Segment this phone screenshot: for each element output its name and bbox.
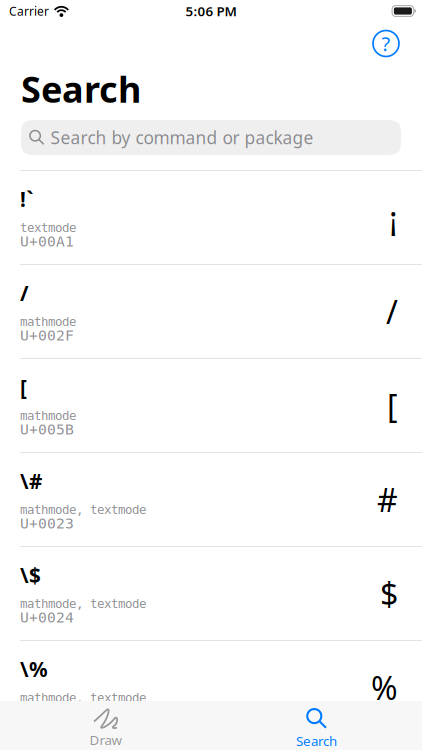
staticText: /: [20, 279, 29, 307]
staticText: !`: [20, 185, 34, 213]
staticText: textmode: [20, 220, 76, 235]
button[interactable]: Help: [368, 25, 404, 61]
staticText: \$: [20, 561, 41, 589]
staticText: Search by command or package: [50, 126, 313, 149]
button[interactable]: Search: [211, 701, 422, 750]
staticText: \%: [20, 655, 48, 683]
staticText: [: [20, 373, 27, 401]
staticText: Search: [296, 732, 337, 750]
staticText: \#: [20, 467, 42, 495]
staticText: mathmode: [20, 408, 76, 423]
staticText: Draw: [89, 731, 121, 749]
staticText: mathmode, textmode: [20, 502, 146, 517]
button[interactable]: !`: [0, 171, 422, 264]
staticText: 5:06 PM: [185, 2, 236, 20]
staticText: mathmode: [20, 314, 76, 329]
staticText: %: [371, 666, 398, 709]
staticText: [: [387, 384, 398, 427]
staticText: ?: [381, 30, 390, 57]
button[interactable]: [: [0, 359, 422, 452]
staticText: ¡: [389, 196, 398, 239]
button[interactable]: \#: [0, 453, 422, 546]
button[interactable]: /: [0, 265, 422, 358]
staticText: $: [380, 572, 398, 615]
button[interactable]: Search by command or package: [21, 120, 401, 155]
staticText: mathmode, textmode: [20, 690, 146, 705]
button[interactable]: \$: [0, 547, 422, 640]
staticText: Carrier: [9, 3, 49, 19]
staticText: #: [377, 478, 398, 521]
staticText: U+005B: [20, 421, 74, 438]
button[interactable]: \%: [0, 641, 422, 734]
staticText: U+002F: [20, 327, 74, 344]
staticText: U+0023: [20, 515, 74, 532]
staticText: /: [386, 290, 398, 333]
staticText: U+00A1: [20, 233, 74, 250]
staticText: Search: [21, 65, 141, 113]
staticText: U+0024: [20, 609, 74, 626]
staticText: mathmode, textmode: [20, 596, 146, 611]
button[interactable]: Draw: [0, 701, 211, 750]
